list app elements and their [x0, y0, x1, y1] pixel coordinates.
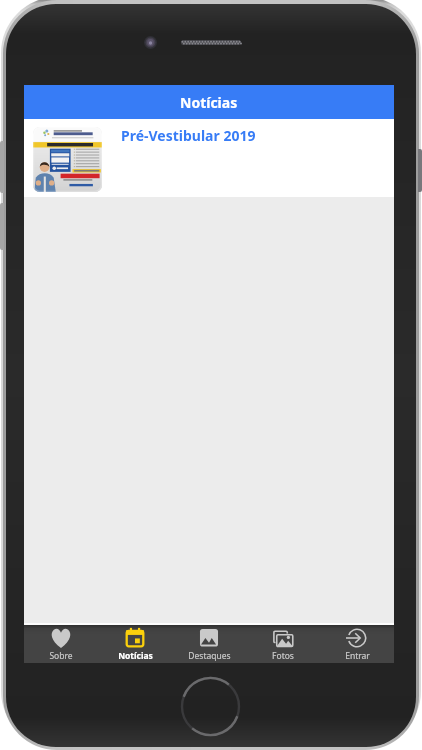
button[interactable]: Notícias: [98, 625, 172, 663]
button[interactable]: Destaques: [172, 625, 246, 663]
staticText: Pré-Vestibular 2019: [121, 126, 256, 145]
button[interactable]: Fotos: [246, 625, 320, 663]
staticText: Fotos: [272, 650, 294, 662]
button[interactable]: Sobre: [24, 625, 98, 663]
staticText: Notícias: [180, 93, 238, 112]
button[interactable]: Pré-Vestibular 2019: [24, 119, 394, 197]
staticText: Destaques: [188, 650, 231, 662]
staticText: Entrar: [345, 650, 370, 662]
staticText: Notícias: [118, 650, 153, 662]
button[interactable]: Entrar: [320, 625, 394, 663]
staticText: Sobre: [49, 650, 73, 662]
